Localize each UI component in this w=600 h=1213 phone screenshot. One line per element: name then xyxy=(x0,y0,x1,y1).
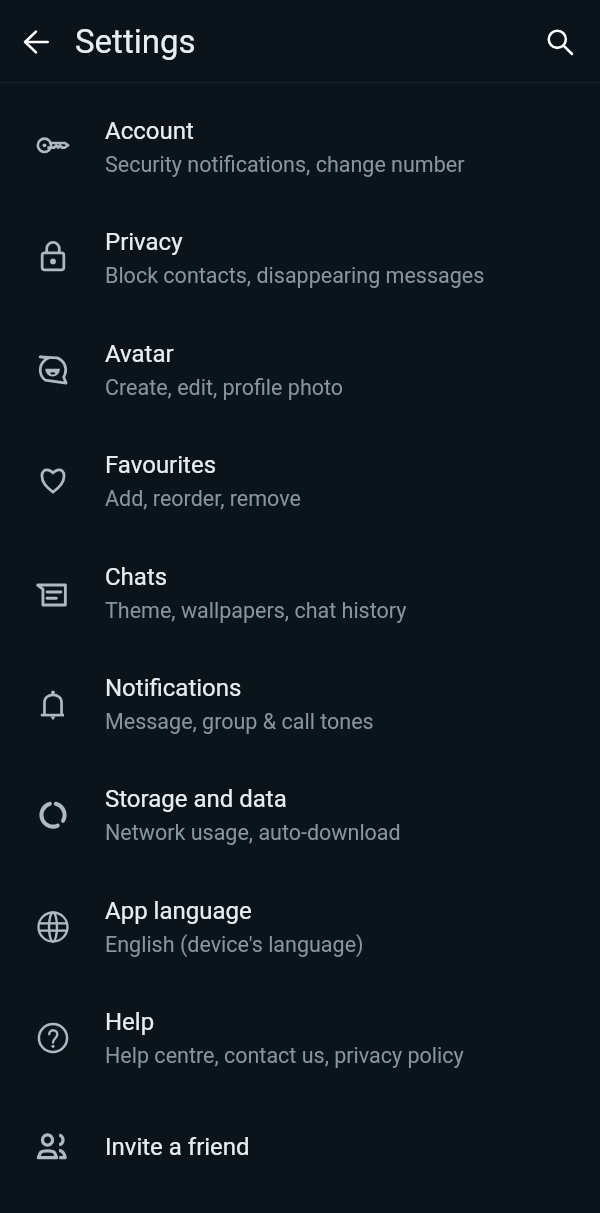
staticText: English (device's language) xyxy=(105,932,364,957)
staticText: Invite a friend xyxy=(105,1133,250,1161)
button[interactable]: Favourites xyxy=(0,425,600,536)
staticText: Notifications xyxy=(105,674,242,702)
staticText: Block contacts, disappearing messages xyxy=(105,263,485,288)
staticText: Favourites xyxy=(105,451,217,479)
staticText: Avatar xyxy=(105,340,174,368)
button[interactable]: Notifications xyxy=(0,648,600,759)
button[interactable]: Account xyxy=(0,91,600,202)
staticText: Account xyxy=(105,117,194,145)
button[interactable]: Storage and data xyxy=(0,759,600,870)
staticText: App language xyxy=(105,897,252,925)
button[interactable]: Search xyxy=(534,16,586,68)
staticText: Settings xyxy=(75,22,196,61)
button[interactable]: App language xyxy=(0,871,600,982)
staticText: Security notifications, change number xyxy=(105,152,465,177)
staticText: Chats xyxy=(105,563,168,591)
button[interactable]: Back xyxy=(11,16,63,68)
staticText: Privacy xyxy=(105,228,183,256)
button[interactable]: Avatar xyxy=(0,314,600,425)
staticText: Help xyxy=(105,1008,155,1036)
staticText: Create, edit, profile photo xyxy=(105,375,344,400)
staticText: Add, reorder, remove xyxy=(105,486,301,511)
button[interactable]: Privacy xyxy=(0,202,600,313)
button[interactable]: Invite a friend xyxy=(0,1091,600,1203)
button[interactable]: Chats xyxy=(0,537,600,648)
staticText: Message, group & call tones xyxy=(105,709,374,734)
staticText: Network usage, auto-download xyxy=(105,820,401,845)
staticText: Storage and data xyxy=(105,785,287,813)
staticText: Help centre, contact us, privacy policy xyxy=(105,1043,464,1068)
staticText: Theme, wallpapers, chat history xyxy=(105,598,407,623)
button[interactable]: Help xyxy=(0,982,600,1093)
